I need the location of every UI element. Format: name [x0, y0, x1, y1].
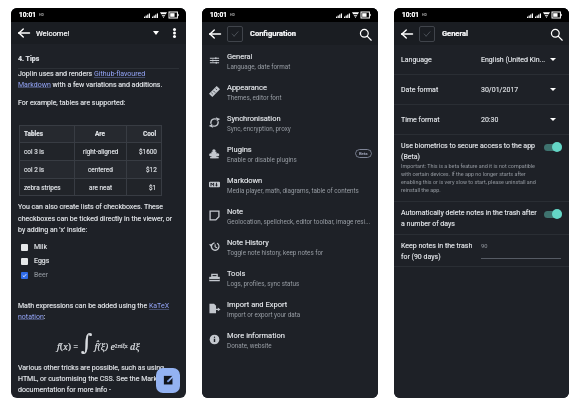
staticText: Math expressions can be added using the …	[18, 302, 179, 321]
staticText: Toggle note history, keep notes for	[227, 249, 324, 256]
staticText: Enable or disable plugins	[227, 156, 297, 163]
button[interactable]: Appearance	[202, 76, 378, 107]
staticText: 10:01	[19, 11, 36, 19]
staticText: right-aligned	[83, 148, 119, 156]
button[interactable]: Automatically delete notes in the trash …	[394, 202, 569, 234]
button[interactable]: Search	[548, 26, 564, 42]
staticText: f(x) = ∫ f̂(ξ) e2πiξx dξ	[57, 330, 140, 356]
staticText: centered	[88, 166, 113, 174]
staticText: Synchronisation	[227, 114, 281, 123]
staticText: Important: This is a beta feature and it…	[401, 163, 538, 194]
button[interactable]: Eggs	[18, 254, 179, 268]
button[interactable]: More options	[167, 26, 181, 40]
staticText: Automatically delete notes in the trash …	[401, 209, 538, 227]
staticText: Markdown	[227, 176, 263, 185]
staticText: Welcome!	[36, 29, 70, 38]
staticText: Tools	[227, 269, 246, 278]
button[interactable]: Beer	[18, 268, 179, 282]
staticText: 30/01/2017	[481, 86, 519, 94]
staticText: Joplin uses and renders Github-flavoured…	[18, 70, 179, 89]
button[interactable]: Save settings	[227, 26, 243, 42]
button[interactable]: Synchronisation	[202, 107, 378, 138]
staticText: Note History	[227, 238, 269, 247]
button[interactable]: Back	[206, 25, 224, 43]
staticText: You can also create lists of checkboxes.…	[18, 203, 179, 234]
staticText: General	[227, 52, 253, 61]
staticText: Various other tricks are possible, such …	[18, 364, 179, 394]
staticText: Themes, editor font	[227, 94, 282, 101]
button[interactable]: Note History	[202, 231, 378, 262]
staticText: Logs, profiles, sync status	[227, 280, 300, 287]
staticText: Are	[95, 130, 106, 138]
staticText: col 2 is	[24, 166, 45, 174]
staticText: HD	[422, 13, 427, 17]
staticText: Donate, website	[227, 342, 272, 349]
staticText: More information	[227, 331, 285, 340]
staticText: Keep notes in the trash for (90 days)	[401, 242, 481, 260]
staticText: 10:01	[402, 11, 419, 19]
staticText: 20:30	[481, 116, 499, 124]
staticText: $1600	[139, 148, 157, 156]
button[interactable]: Edit note	[156, 368, 180, 393]
staticText: 10:01	[210, 11, 227, 19]
staticText: Plugins	[227, 145, 252, 154]
button[interactable]: Date format	[394, 75, 569, 104]
button[interactable]: Search	[357, 26, 373, 42]
staticText: 90	[481, 243, 488, 250]
staticText: For example, tables are supported:	[18, 99, 126, 107]
staticText: Tables	[24, 130, 43, 138]
staticText: Sync, encryption, proxy	[227, 125, 291, 132]
staticText: Appearance	[227, 83, 267, 92]
staticText: Geolocation, spellcheck, editor toolbar,…	[227, 218, 371, 225]
staticText: Eggs	[34, 257, 50, 265]
button[interactable]: Tools	[202, 262, 378, 293]
staticText: 4. Tips	[18, 55, 40, 63]
button[interactable]: Save settings	[419, 26, 435, 42]
button[interactable]: More information	[202, 324, 378, 355]
button[interactable]: Time format	[394, 105, 569, 134]
staticText: col 3 is	[24, 148, 45, 156]
button[interactable]: Import and Export	[202, 293, 378, 324]
staticText: are neat	[89, 184, 113, 192]
staticText: $1	[149, 184, 157, 192]
staticText: Import or export your data	[227, 311, 301, 318]
staticText: General	[442, 29, 469, 38]
staticText: Time format	[401, 116, 440, 124]
staticText: Date format	[401, 86, 439, 94]
button[interactable]: Language	[394, 45, 569, 74]
staticText: Use biometrics to secure access to the a…	[401, 142, 538, 160]
staticText: Cool	[143, 130, 157, 138]
button[interactable]: Back	[15, 24, 33, 42]
staticText: Beer	[34, 271, 49, 279]
staticText: English (United Kin...	[481, 56, 546, 64]
staticText: zebra stripes	[24, 184, 61, 192]
button[interactable]: Note menu	[149, 26, 163, 40]
button[interactable]: Back	[398, 25, 416, 43]
button[interactable]: Plugins	[202, 138, 378, 169]
staticText: Media player, math, diagrams, table of c…	[227, 187, 359, 194]
staticText: HD	[230, 13, 235, 17]
staticText: Language	[401, 56, 432, 64]
button[interactable]: Use biometrics to secure access to the a…	[394, 135, 569, 201]
button[interactable]: Markdown	[202, 169, 378, 200]
button[interactable]: Milk	[18, 240, 179, 254]
staticText: Import and Export	[227, 300, 288, 309]
staticText: Milk	[34, 243, 48, 251]
staticText: $12	[146, 166, 157, 174]
staticText: Beta	[359, 151, 368, 156]
staticText: HD	[39, 13, 44, 17]
staticText: Configuration	[250, 29, 297, 38]
button[interactable]: Note	[202, 200, 378, 231]
staticText: Note	[227, 207, 244, 216]
button[interactable]: General	[202, 45, 378, 76]
staticText: Language, date format	[227, 63, 291, 70]
